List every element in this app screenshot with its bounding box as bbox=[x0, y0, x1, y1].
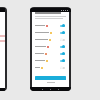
button[interactable]: Switch on bbox=[60, 24, 65, 27]
button[interactable]: Switch off bbox=[35, 36, 66, 43]
button[interactable]: Switch off bbox=[35, 64, 66, 71]
button[interactable]: Switch on bbox=[35, 57, 66, 64]
button[interactable]: Switch on bbox=[35, 50, 66, 57]
button[interactable]: Switch on bbox=[35, 43, 66, 50]
button[interactable]: Switch off bbox=[60, 38, 65, 41]
button[interactable]: Switch off bbox=[60, 66, 65, 69]
button[interactable] bbox=[35, 76, 66, 80]
button[interactable]: Switch on bbox=[60, 59, 65, 62]
button[interactable]: Switch on bbox=[60, 52, 65, 55]
button[interactable]: Switch on bbox=[60, 45, 65, 48]
button[interactable]: Switch on bbox=[60, 31, 65, 34]
button[interactable]: Switch on bbox=[35, 29, 66, 36]
button[interactable]: Switch on bbox=[35, 22, 66, 29]
